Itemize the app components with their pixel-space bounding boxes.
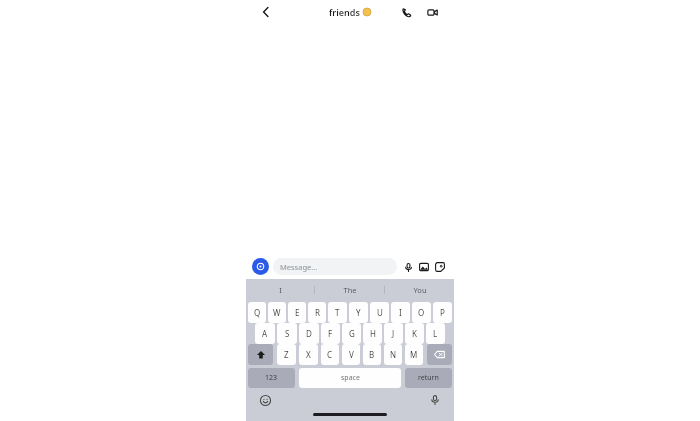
button[interactable]: V	[342, 344, 360, 365]
button[interactable]: A	[255, 323, 275, 344]
staticText: J	[392, 328, 395, 339]
button[interactable]: B	[363, 344, 381, 365]
button[interactable]: Back	[256, 2, 276, 22]
button[interactable]: M	[405, 344, 423, 365]
button[interactable]: K	[405, 323, 424, 344]
staticText: T	[335, 307, 340, 318]
button[interactable]: W	[268, 302, 286, 323]
staticText: Q	[254, 307, 261, 318]
staticText: L	[433, 328, 438, 339]
button[interactable]: R	[308, 302, 326, 323]
button[interactable]: Backspace	[427, 344, 452, 365]
button[interactable]: C	[321, 344, 339, 365]
staticText: Y	[356, 307, 361, 318]
staticText: space	[341, 373, 360, 383]
staticText: O	[418, 307, 425, 318]
button[interactable]: Message...	[273, 258, 397, 275]
staticText: B	[369, 349, 375, 360]
staticText: The	[343, 285, 357, 295]
button[interactable]: U	[370, 302, 389, 323]
staticText: return	[418, 373, 439, 383]
button[interactable]: You	[385, 279, 454, 301]
staticText: P	[440, 307, 445, 318]
staticText: friends	[329, 6, 360, 18]
staticText: Message...	[280, 262, 318, 272]
staticText: V	[349, 349, 354, 360]
button[interactable]: Y	[349, 302, 368, 323]
button[interactable]: I	[246, 279, 314, 301]
staticText: G	[349, 328, 355, 339]
button[interactable]: P	[433, 302, 452, 323]
button[interactable]: L	[426, 323, 445, 344]
button[interactable]: return	[405, 368, 452, 388]
staticText: S	[285, 328, 290, 339]
staticText: C	[327, 349, 333, 360]
button[interactable]: X	[299, 344, 318, 365]
button[interactable]: Voice message	[400, 259, 416, 275]
button[interactable]: S	[277, 323, 297, 344]
button[interactable]: Voice input	[428, 393, 442, 407]
staticText: D	[306, 328, 312, 339]
button[interactable]: O	[412, 302, 431, 323]
staticText: I	[399, 307, 402, 318]
button[interactable]: Voice call	[396, 2, 416, 22]
staticText: X	[306, 349, 311, 360]
button[interactable]: F	[321, 323, 340, 344]
button[interactable]: Stickers	[432, 259, 448, 275]
staticText: F	[328, 328, 333, 339]
button[interactable]: Shift	[248, 344, 273, 365]
button[interactable]: The	[315, 279, 384, 301]
button[interactable]: Z	[277, 344, 296, 365]
button[interactable]: Gallery	[416, 259, 432, 275]
button[interactable]: J	[384, 323, 403, 344]
staticText: H	[370, 328, 376, 339]
button[interactable]: Camera	[252, 258, 269, 275]
button[interactable]: Q	[248, 302, 266, 323]
button[interactable]: H	[363, 323, 382, 344]
staticText: W	[273, 307, 281, 318]
button[interactable]: Video call	[422, 2, 442, 22]
button[interactable]: T	[328, 302, 347, 323]
staticText: Z	[284, 349, 289, 360]
button[interactable]: space	[299, 368, 401, 388]
button[interactable]: 123	[248, 368, 295, 388]
button[interactable]: G	[342, 323, 361, 344]
staticText: N	[390, 349, 397, 360]
button[interactable]: D	[299, 323, 319, 344]
staticText: R	[315, 307, 320, 318]
button[interactable]: Emoji	[258, 393, 272, 407]
staticText: K	[412, 328, 417, 339]
staticText: You	[413, 285, 427, 295]
button[interactable]: I	[391, 302, 410, 323]
staticText: E	[295, 307, 300, 318]
staticText: U	[377, 307, 383, 318]
staticText: M	[410, 349, 418, 360]
staticText: A	[262, 328, 268, 339]
staticText: I	[279, 285, 282, 295]
button[interactable]: N	[384, 344, 402, 365]
staticText: 123	[265, 373, 278, 383]
button[interactable]: E	[288, 302, 306, 323]
button[interactable]: friends	[329, 6, 371, 18]
